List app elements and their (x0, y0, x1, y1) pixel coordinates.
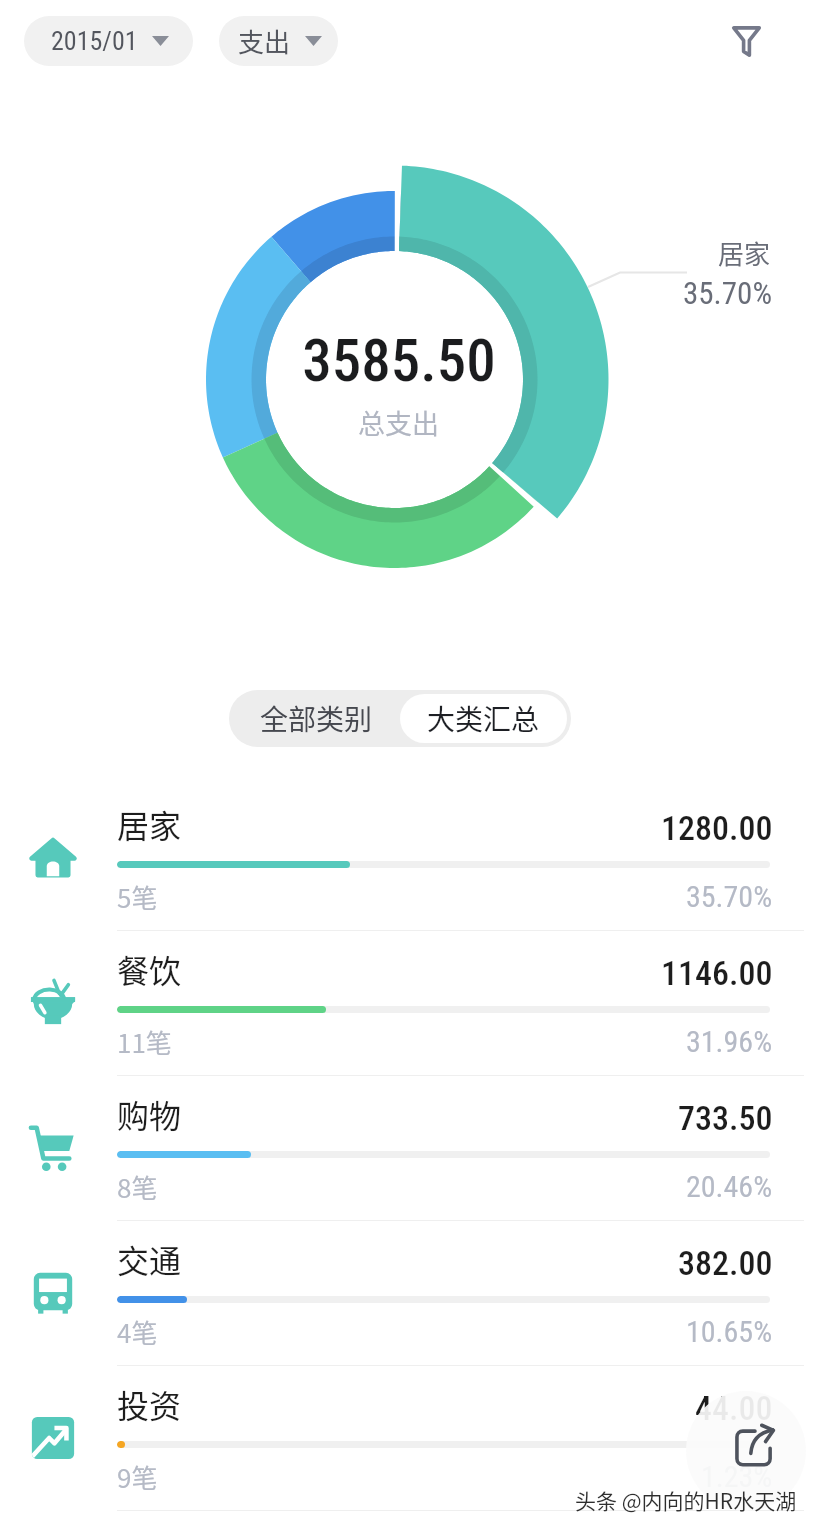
staticText: 居家 (718, 234, 771, 272)
staticText: 35.70% (683, 275, 773, 311)
staticText: 1146.00 (661, 953, 773, 993)
button[interactable]: Filter (717, 12, 775, 70)
button[interactable]: 居家 (0, 786, 816, 931)
button[interactable]: 大类汇总 (400, 694, 567, 743)
staticText: 总支出 (358, 403, 439, 442)
button[interactable]: 2015/01 (24, 16, 193, 66)
staticText: 3585.50 (302, 326, 496, 395)
staticText: 382.00 (678, 1243, 773, 1283)
staticText: 5笔 (117, 878, 158, 916)
staticText: 投资 (117, 1381, 182, 1427)
staticText: 1.23% (701, 1459, 773, 1494)
staticText: 居家 (117, 801, 182, 847)
staticText: 11笔 (117, 1023, 172, 1061)
staticText: 2015/01 (51, 26, 138, 56)
staticText: 31.96% (686, 1024, 773, 1059)
staticText: 10.65% (686, 1314, 773, 1349)
button[interactable]: 交通 (0, 1221, 816, 1366)
staticText: 交通 (117, 1236, 182, 1282)
staticText: 餐饮 (117, 946, 182, 992)
staticText: 35.70% (686, 879, 773, 914)
button[interactable]: Share (686, 1391, 806, 1511)
button[interactable]: 购物 (0, 1076, 816, 1221)
staticText: 大类汇总 (427, 698, 540, 739)
button[interactable]: 投资 (0, 1366, 816, 1511)
staticText: 头条 @内向的HR水天湖 (575, 1485, 797, 1515)
staticText: 44.00 (695, 1388, 773, 1428)
staticText: 全部类别 (260, 698, 373, 739)
button[interactable]: 支出 (219, 16, 338, 66)
button[interactable]: 餐饮 (0, 931, 816, 1076)
staticText: 4笔 (117, 1313, 158, 1351)
staticText: 8笔 (117, 1168, 158, 1206)
staticText: 9笔 (117, 1458, 158, 1496)
staticText: 20.46% (686, 1169, 773, 1204)
staticText: 733.50 (678, 1098, 773, 1138)
button[interactable]: 全部类别 (233, 694, 400, 743)
staticText: 购物 (117, 1091, 182, 1137)
staticText: 1280.00 (661, 808, 773, 848)
staticText: 支出 (238, 22, 291, 60)
